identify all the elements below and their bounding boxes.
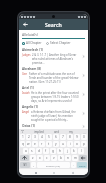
button[interactable]: 2 xyxy=(26,134,31,140)
staticText: Alleluia(h) xyxy=(22,32,38,37)
staticText: n xyxy=(67,156,69,160)
button[interactable]: All Chapter xyxy=(22,41,42,45)
staticText: 4 xyxy=(41,135,43,139)
staticText: u xyxy=(62,142,64,146)
button[interactable]: 9 xyxy=(74,134,80,140)
button[interactable]: 1 xyxy=(20,134,25,140)
button[interactable]: 4 xyxy=(39,134,45,140)
staticText: d xyxy=(38,149,40,153)
staticText: o xyxy=(76,142,78,146)
button[interactable]: . xyxy=(71,162,76,168)
staticText: m xyxy=(74,156,77,160)
button[interactable]: q xyxy=(20,141,25,147)
staticText: Search xyxy=(45,21,62,28)
staticText: "I" xyxy=(21,130,25,134)
staticText: 2 & 3. 1:1-7 | Another king of Gerar who… xyxy=(32,53,81,65)
button[interactable]: c xyxy=(44,155,50,161)
staticText: 2 xyxy=(28,135,30,139)
staticText: q xyxy=(22,142,24,146)
staticText: z xyxy=(32,156,34,160)
button[interactable]: n xyxy=(65,155,71,161)
button[interactable]: and xyxy=(54,130,60,134)
staticText: Done xyxy=(79,164,86,167)
staticText: t xyxy=(48,142,50,146)
staticText: Angelic (1) xyxy=(22,105,39,109)
staticText: h xyxy=(59,149,61,153)
button[interactable]: k xyxy=(71,148,77,154)
button[interactable]: Abimelech (1) xyxy=(19,47,88,66)
button[interactable]: z xyxy=(30,155,36,161)
staticText: g xyxy=(52,149,54,153)
button[interactable]: u xyxy=(60,141,66,147)
button[interactable]: m xyxy=(72,155,78,161)
button[interactable]: Abraham (8) xyxy=(19,66,88,85)
staticText: l xyxy=(81,149,82,153)
button[interactable]: t xyxy=(46,141,52,147)
button[interactable]: y xyxy=(53,141,59,147)
button[interactable]: 7 xyxy=(60,134,66,140)
button[interactable]: h xyxy=(57,148,63,154)
button[interactable]: o xyxy=(74,141,80,147)
button[interactable]: Ariel (1) xyxy=(19,85,88,104)
staticText: w xyxy=(27,142,30,146)
staticText: s xyxy=(31,149,33,153)
button[interactable]: 8 xyxy=(67,134,73,140)
staticText: , xyxy=(33,163,34,167)
staticText: 8 xyxy=(69,135,71,139)
staticText: Isaiah xyxy=(22,91,30,95)
button[interactable]: v xyxy=(51,155,57,161)
button[interactable]: "I" xyxy=(21,130,25,134)
button[interactable]: j xyxy=(64,148,70,154)
button[interactable]: 0 xyxy=(81,134,87,140)
button[interactable]: 6 xyxy=(53,134,59,140)
button[interactable]: d xyxy=(36,148,42,154)
staticText: Father of a multitude was the son of Ter… xyxy=(29,72,81,84)
staticText: All Chapter xyxy=(26,41,42,45)
button[interactable]: , xyxy=(31,162,36,168)
button[interactable]: implied xyxy=(34,130,44,134)
staticText: Judges xyxy=(22,53,31,57)
button[interactable]: p xyxy=(81,141,87,147)
button[interactable]: English (UK) xyxy=(37,162,70,168)
staticText: i xyxy=(70,142,71,146)
button[interactable]: Select Chapter xyxy=(46,41,71,45)
button[interactable]: e xyxy=(32,141,38,147)
staticText: implied xyxy=(34,130,44,134)
button[interactable]: l xyxy=(78,148,84,154)
button[interactable]: 3 xyxy=(32,134,38,140)
staticText: x xyxy=(39,156,41,160)
staticText: and xyxy=(54,130,60,134)
button[interactable]: r xyxy=(39,141,45,147)
button[interactable]: Backspace xyxy=(79,155,87,161)
button[interactable]: f xyxy=(43,148,49,154)
button[interactable]: Angelic (1) xyxy=(19,104,88,123)
button[interactable]: my xyxy=(69,130,74,134)
button[interactable]: Back xyxy=(70,170,75,175)
button[interactable]: ⋯ xyxy=(83,131,86,134)
button[interactable]: !#1 xyxy=(20,162,30,168)
staticText: English (UK) xyxy=(46,164,61,167)
staticText: 7 xyxy=(62,135,64,139)
button[interactable]: Ozias (1) xyxy=(19,123,88,129)
staticText: Angel xyxy=(22,110,30,114)
button[interactable]: b xyxy=(58,155,64,161)
button[interactable]: x xyxy=(37,155,43,161)
button[interactable]: w xyxy=(26,141,31,147)
staticText: 5 xyxy=(48,135,50,139)
staticText: r xyxy=(41,142,43,146)
button[interactable]: i xyxy=(67,141,73,147)
button[interactable]: Done xyxy=(77,162,87,168)
button[interactable]: Back xyxy=(21,20,30,29)
button[interactable]: Shift xyxy=(20,155,29,161)
button[interactable]: 5 xyxy=(46,134,52,140)
button[interactable]: g xyxy=(50,148,56,154)
button[interactable]: Alleluia(h) xyxy=(22,32,85,39)
staticText: 9 xyxy=(76,135,78,139)
button[interactable]: Recents xyxy=(33,170,38,175)
button[interactable]: Home xyxy=(51,170,56,175)
staticText: 1 xyxy=(22,135,24,139)
staticText: p xyxy=(83,142,85,146)
staticText: 6 xyxy=(55,135,57,139)
button[interactable]: s xyxy=(29,148,35,154)
button[interactable]: a xyxy=(23,148,28,154)
